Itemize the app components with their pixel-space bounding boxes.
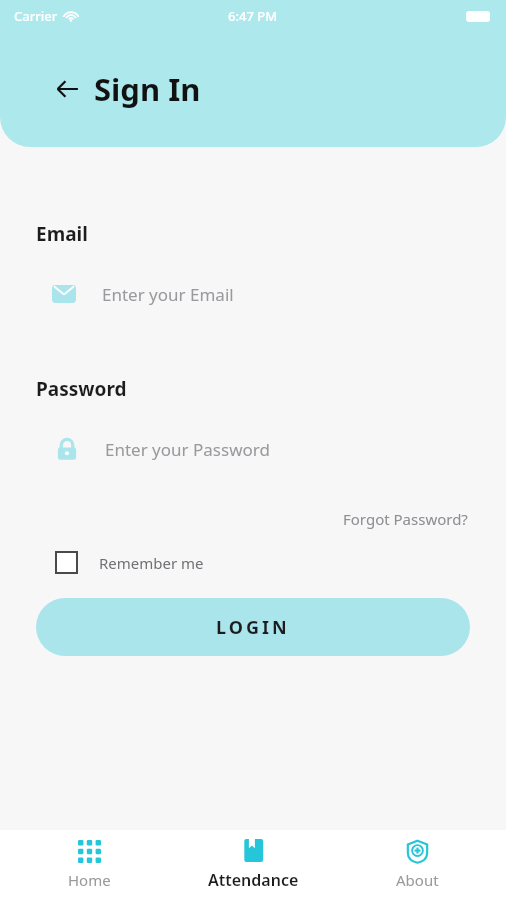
staticText: Carrier: [14, 7, 58, 25]
button[interactable]: Forgot Password?: [341, 507, 470, 531]
button[interactable]: Remember me: [36, 551, 204, 574]
staticText: LOGIN: [216, 615, 290, 640]
staticText: Attendance: [208, 869, 299, 891]
staticText: Forgot Password?: [343, 509, 468, 529]
staticText: Enter your Email: [102, 283, 234, 306]
staticText: About: [396, 870, 439, 890]
button[interactable]: About: [342, 834, 492, 896]
staticText: Remember me: [99, 553, 204, 573]
staticText: Home: [68, 870, 111, 890]
button[interactable]: Attendance: [178, 833, 328, 897]
staticText: Password: [36, 376, 127, 402]
button[interactable]: Home: [14, 834, 164, 896]
staticText: Sign In: [94, 68, 201, 110]
button[interactable]: Enter your Email: [36, 274, 470, 314]
button[interactable]: Enter your Password: [36, 429, 470, 469]
button[interactable]: Back: [50, 72, 84, 106]
staticText: Enter your Password: [105, 438, 270, 461]
button[interactable]: LOGIN: [36, 598, 470, 656]
staticText: Email: [36, 221, 88, 247]
staticText: 6:47 PM: [228, 7, 278, 25]
